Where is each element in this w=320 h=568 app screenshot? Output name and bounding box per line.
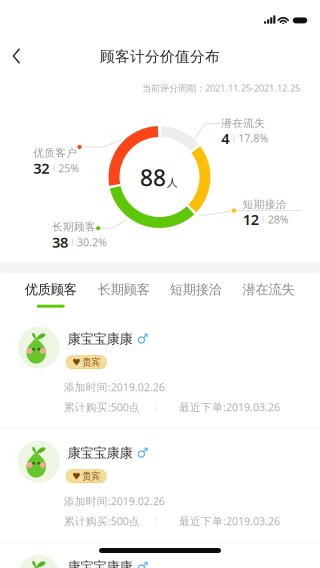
staticText: 30.2% (77, 235, 107, 249)
button[interactable]: 优质顾客 (20, 278, 82, 314)
staticText: ♥ (72, 471, 80, 481)
staticText: 长期顾客 (98, 281, 150, 298)
staticText: ♂ (137, 559, 149, 568)
staticText: 88 (140, 162, 166, 192)
button[interactable]: 短期接洽 (165, 278, 227, 314)
staticText: 12 (243, 210, 259, 229)
staticText: ♂ (137, 445, 149, 460)
staticText: 累计购买:500点 (64, 514, 140, 528)
staticText: 32 (33, 158, 49, 178)
staticText: 最近下单:2019.03.26 (179, 514, 280, 528)
staticText: 人 (167, 176, 178, 189)
button[interactable]: 康宝宝康康 (0, 543, 320, 568)
staticText: 长期顾客 (52, 220, 96, 233)
button[interactable]: 康宝宝康康 (0, 315, 320, 429)
staticText: 累计购买:500点 (64, 400, 140, 414)
staticText: 优质顾客 (25, 281, 77, 298)
staticText: 贵宾 (82, 470, 100, 482)
staticText: 25% (58, 161, 79, 175)
staticText: 最近下单:2019.03.26 (179, 400, 280, 414)
staticText: 顾客计分价值分布 (100, 47, 220, 65)
staticText: 贵宾 (82, 356, 100, 368)
staticText: ♂ (137, 331, 149, 346)
staticText: 4 (221, 128, 229, 148)
button[interactable]: 返回 (0, 0, 320, 568)
staticText: 潜在流失 (242, 281, 294, 298)
staticText: 当前评分周期：2021.11.25-2021.12.25 (142, 82, 300, 94)
staticText: 28% (268, 212, 289, 226)
staticText: 康宝宝康康 (68, 445, 133, 461)
staticText: 潜在流失 (221, 117, 265, 130)
staticText: 短期接洽 (243, 198, 287, 211)
staticText: 添加时间:2019.02.26 (64, 380, 165, 394)
staticText: 康宝宝康康 (68, 331, 133, 347)
staticText: 康宝宝康康 (68, 559, 133, 568)
staticText: 38 (52, 232, 68, 252)
staticText: 添加时间:2019.02.26 (64, 494, 165, 508)
staticText: 17.8% (238, 131, 268, 145)
button[interactable]: 潜在流失 (237, 278, 299, 314)
staticText: ♥ (72, 357, 80, 367)
staticText: 优质客户 (33, 146, 77, 159)
staticText: 短期接洽 (170, 281, 222, 298)
button[interactable]: 长期顾客 (93, 278, 155, 314)
button[interactable]: 康宝宝康康 (0, 429, 320, 543)
